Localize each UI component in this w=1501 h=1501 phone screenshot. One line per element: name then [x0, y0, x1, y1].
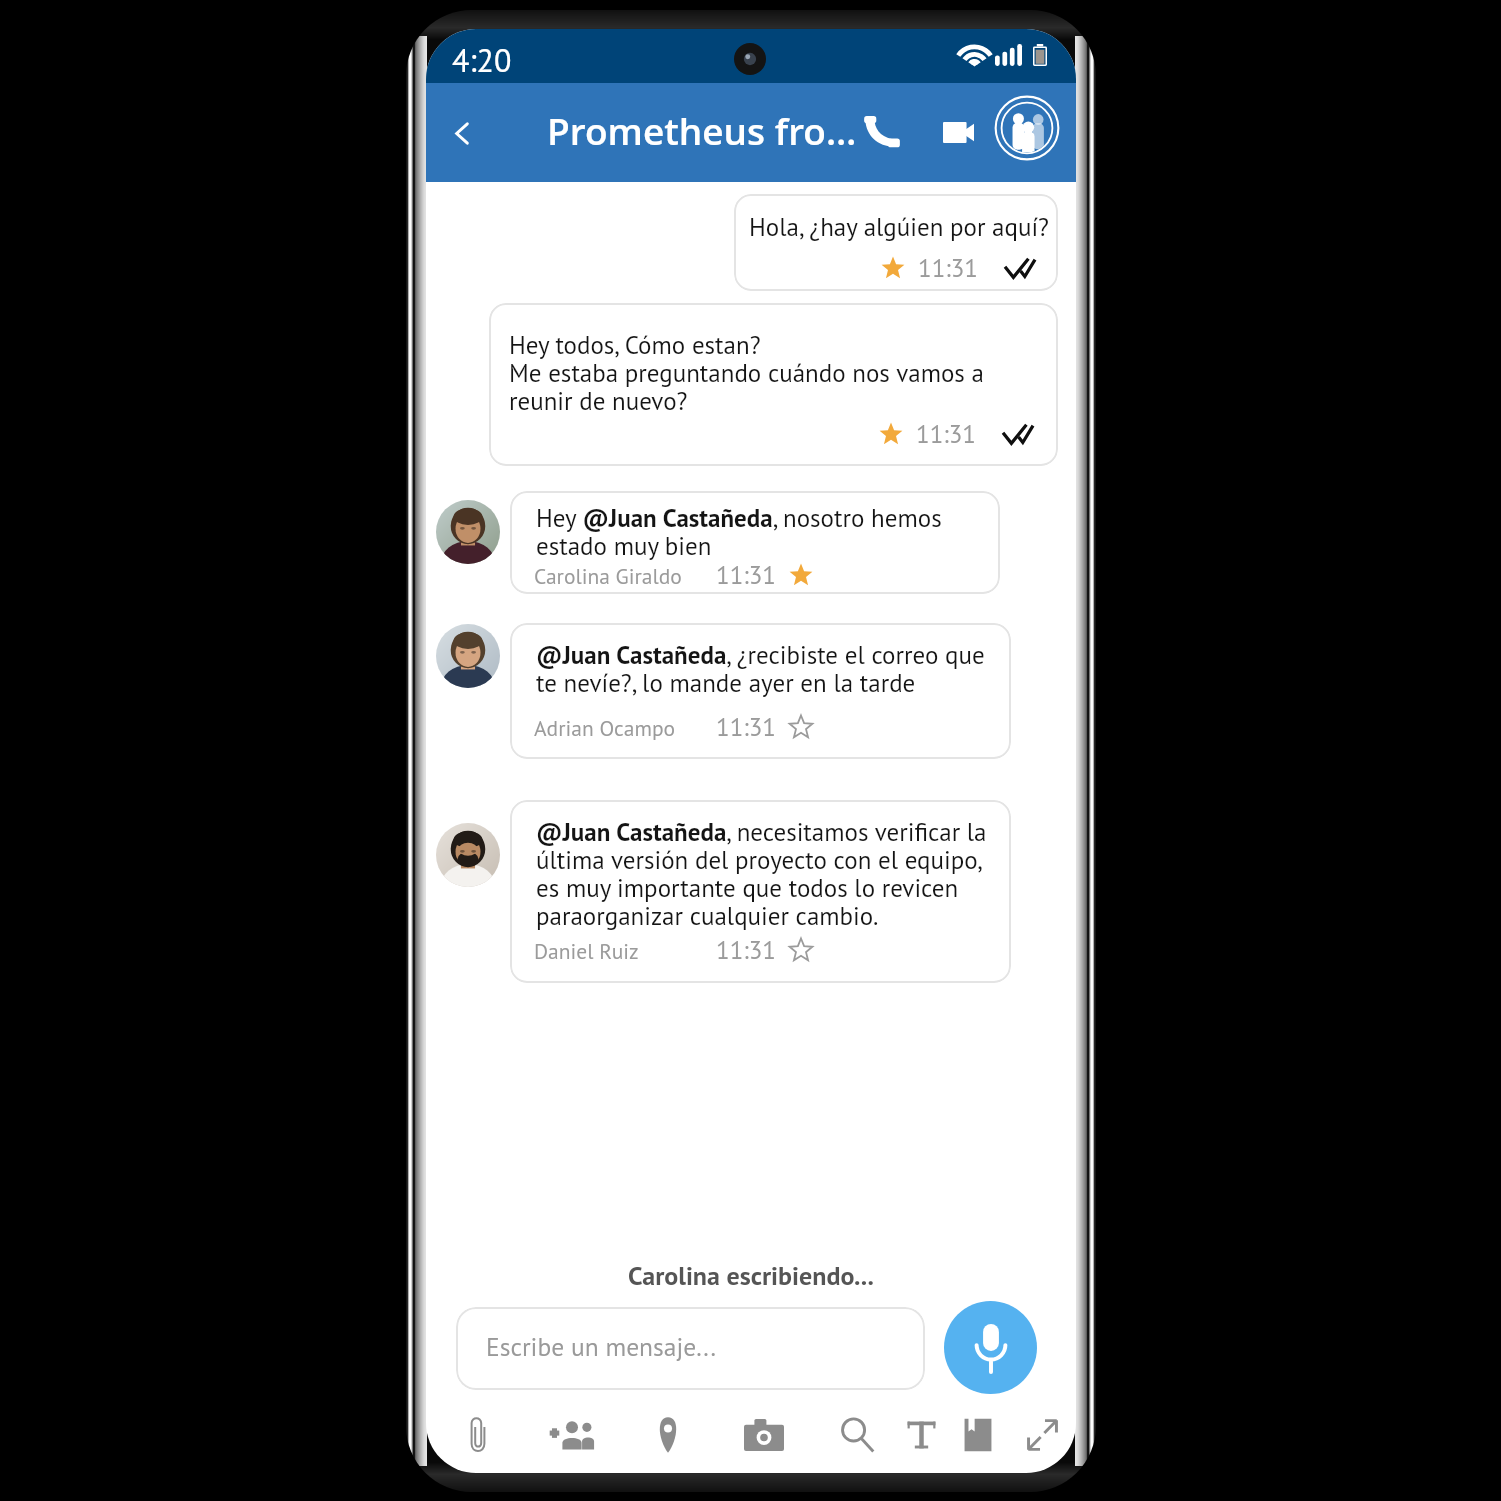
staticText: Hey @Juan Castañeda, nosotro hemos estad… [536, 502, 942, 562]
button[interactable]: Voice message [944, 1301, 1037, 1394]
staticText: Hey todos, Cómo estan? Me estaba pregunt… [509, 329, 984, 417]
staticText: @Juan Castañeda, necesitamos verificar l… [536, 816, 987, 932]
staticText: Escribe un mensaje... [486, 1330, 716, 1363]
staticText: 4:20 [452, 39, 512, 80]
staticText: 11:31 [716, 711, 776, 743]
button[interactable]: Format text [891, 1405, 951, 1465]
button[interactable]: @Juan Castañeda, necesitamos verificar l… [510, 800, 1011, 983]
button[interactable]: Back [432, 100, 492, 166]
staticText: 11:31 [716, 934, 776, 966]
button[interactable]: Camera [734, 1405, 794, 1465]
staticText: 11:31 [716, 559, 776, 591]
button[interactable]: Group info [990, 91, 1064, 165]
staticText: Hola, ¿hay algúien por aquí? [749, 211, 1050, 243]
button[interactable]: Expand [1012, 1405, 1072, 1465]
button[interactable]: Location [638, 1405, 698, 1465]
button[interactable]: Escribe un mensaje... [456, 1307, 925, 1390]
staticText: 11:31 [918, 252, 978, 284]
button[interactable]: Add person [542, 1405, 602, 1465]
button[interactable]: Attach [448, 1405, 508, 1465]
button[interactable]: Call [852, 99, 912, 165]
staticText: @Juan Castañeda, ¿recibiste el correo qu… [536, 639, 985, 699]
staticText: Adrian Ocampo [534, 714, 676, 742]
button[interactable]: Search [828, 1405, 888, 1465]
button[interactable]: Hey todos, Cómo estan? Me estaba pregunt… [489, 303, 1058, 466]
button[interactable]: Hola, ¿hay algúien por aquí? [734, 194, 1058, 291]
staticText: 11:31 [916, 418, 976, 450]
button[interactable]: Bookmark [948, 1405, 1008, 1465]
staticText: Prometheus fro… [547, 105, 857, 155]
staticText: Carolina escribiendo... [628, 1259, 874, 1293]
button[interactable]: Video call [928, 99, 988, 165]
staticText: Daniel Ruiz [534, 937, 639, 965]
button[interactable]: @Juan Castañeda, ¿recibiste el correo qu… [510, 623, 1011, 759]
button[interactable]: Hey @Juan Castañeda, nosotro hemos estad… [510, 491, 1000, 594]
staticText: Carolina Giraldo [534, 562, 682, 590]
